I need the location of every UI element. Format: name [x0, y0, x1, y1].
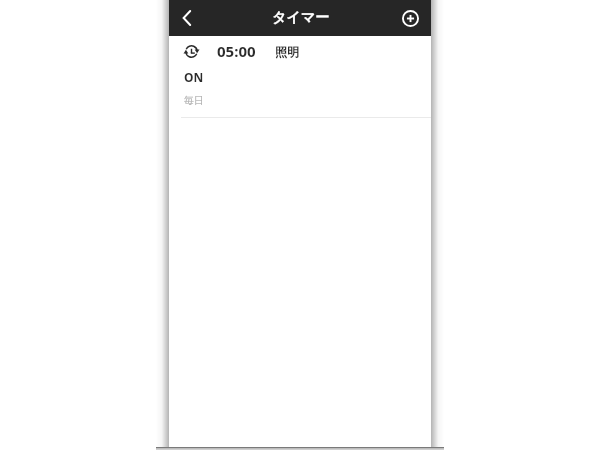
staticText: ON [184, 69, 204, 85]
staticText: 05:00 [217, 41, 256, 61]
staticText: 毎日 [184, 94, 204, 107]
button[interactable]: Add timer [394, 0, 427, 36]
staticText: タイマー [272, 9, 329, 27]
staticText: 照明 [275, 44, 299, 59]
button[interactable]: Back [169, 0, 205, 36]
button[interactable]: 05:00 [169, 36, 431, 118]
